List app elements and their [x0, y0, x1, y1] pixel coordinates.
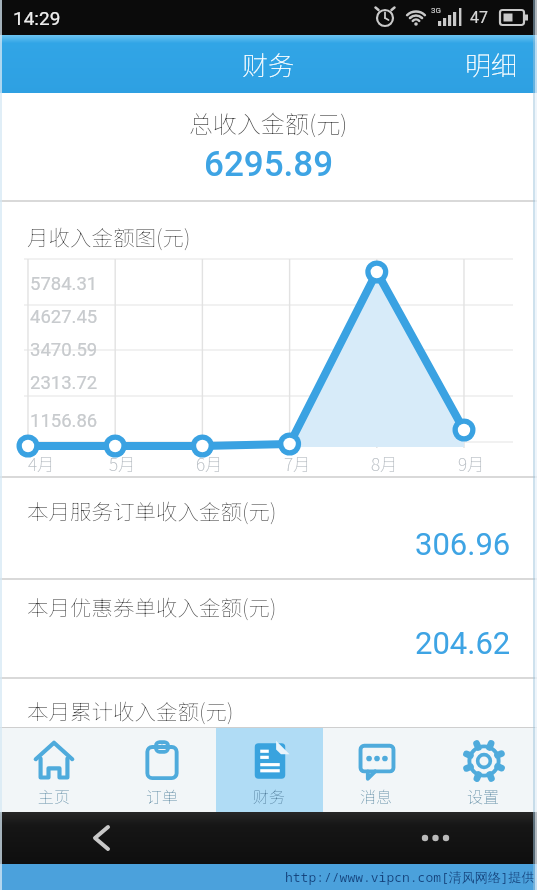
staticText: 消息: [360, 784, 393, 807]
staticText: 3G: [431, 6, 441, 15]
staticText: 主页: [38, 784, 71, 807]
staticText: 明细: [465, 45, 518, 83]
staticText: 设置: [467, 784, 500, 807]
staticText: 本月累计收入金额(元): [27, 695, 234, 726]
button[interactable]: 本月服务订单收入金额(元): [0, 478, 537, 578]
staticText: 5月: [109, 451, 136, 475]
button[interactable]: 财务: [216, 728, 323, 812]
button[interactable]: 订单: [108, 728, 216, 812]
staticText: 9月: [458, 451, 485, 475]
button[interactable]: 明细: [446, 35, 537, 93]
staticText: 1156.86: [30, 410, 98, 432]
button[interactable]: 本月累计收入金额(元): [0, 679, 537, 727]
staticText: 2313.72: [30, 372, 98, 394]
staticText: 8月: [371, 451, 398, 475]
staticText: 14:29: [13, 7, 61, 29]
staticText: 本月服务订单收入金额(元): [27, 495, 277, 526]
button[interactable]: 本月优惠券单收入金额(元): [0, 580, 537, 677]
staticText: 7月: [284, 451, 311, 475]
staticText: 47: [470, 8, 488, 27]
button[interactable]: 设置: [430, 728, 537, 812]
staticText: 306.96: [415, 526, 511, 562]
staticText: 5784.31: [30, 273, 98, 295]
staticText: 3470.59: [30, 339, 98, 361]
staticText: 6295.89: [204, 144, 334, 185]
staticText: 204.62: [415, 625, 511, 661]
staticText: 4627.45: [30, 306, 98, 328]
staticText: 总收入金额(元): [189, 105, 348, 137]
staticText: 本月优惠券单收入金额(元): [27, 591, 277, 622]
staticText: 财务: [253, 784, 286, 807]
staticText: 订单: [146, 784, 179, 807]
staticText: http://www.vipcn.com[清风网络]提供: [285, 868, 535, 886]
button[interactable]: [0, 812, 537, 864]
staticText: 月收入金额图(元): [27, 221, 191, 252]
staticText: 6月: [196, 451, 223, 475]
button[interactable]: 消息: [323, 728, 430, 812]
button[interactable]: 主页: [0, 728, 108, 812]
staticText: 4月: [28, 451, 55, 475]
staticText: 财务: [242, 45, 295, 83]
